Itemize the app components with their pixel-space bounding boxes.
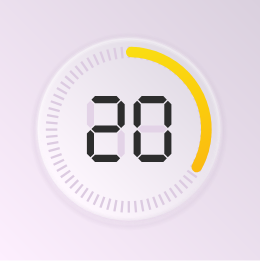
button[interactable]: Timer showing 20 minutes (0, 0, 260, 280)
